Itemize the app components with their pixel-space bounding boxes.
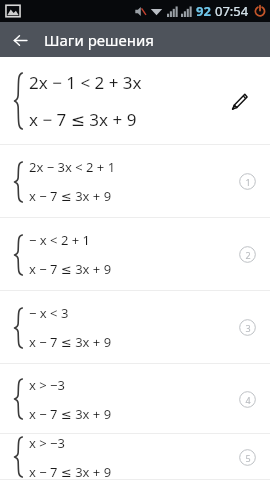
button[interactable]: 2x − 1 < 2 + 3x [0, 57, 270, 145]
staticText: 1 [245, 176, 251, 188]
staticText: x > −3 [29, 434, 65, 452]
staticText: x − 7 ≤ 3x + 9 [29, 333, 112, 351]
staticText: 2x − 3x < 2 + 1 [29, 158, 116, 176]
staticText: 07:54 [215, 2, 249, 20]
staticText: − x < 2 + 1 [29, 231, 90, 249]
staticText: x > −3 [29, 376, 65, 394]
staticText: 92 [196, 2, 211, 20]
button[interactable]: 2x − 3x < 2 + 1 [0, 145, 270, 218]
button[interactable]: Back [6, 26, 34, 54]
staticText: − x < 3 [29, 304, 69, 322]
button[interactable]: x > −3 [0, 434, 270, 480]
staticText: x − 7 ≤ 3x + 9 [29, 463, 112, 480]
staticText: 2 [245, 249, 251, 261]
staticText: x − 7 ≤ 3x + 9 [29, 187, 112, 205]
staticText: 3 [245, 322, 251, 334]
staticText: x − 7 ≤ 3x + 9 [29, 405, 112, 423]
staticText: x − 7 ≤ 3x + 9 [29, 108, 137, 131]
button[interactable]: Edit [222, 84, 256, 118]
button[interactable]: − x < 3 [0, 291, 270, 364]
staticText: 2x − 1 < 2 + 3x [29, 71, 142, 94]
staticText: 5 [245, 452, 251, 464]
staticText: Шаги решения [44, 30, 154, 50]
button[interactable]: x > −3 [0, 364, 270, 434]
staticText: 4 [245, 394, 251, 406]
staticText: x − 7 ≤ 3x + 9 [29, 260, 112, 278]
button[interactable]: − x < 2 + 1 [0, 218, 270, 291]
